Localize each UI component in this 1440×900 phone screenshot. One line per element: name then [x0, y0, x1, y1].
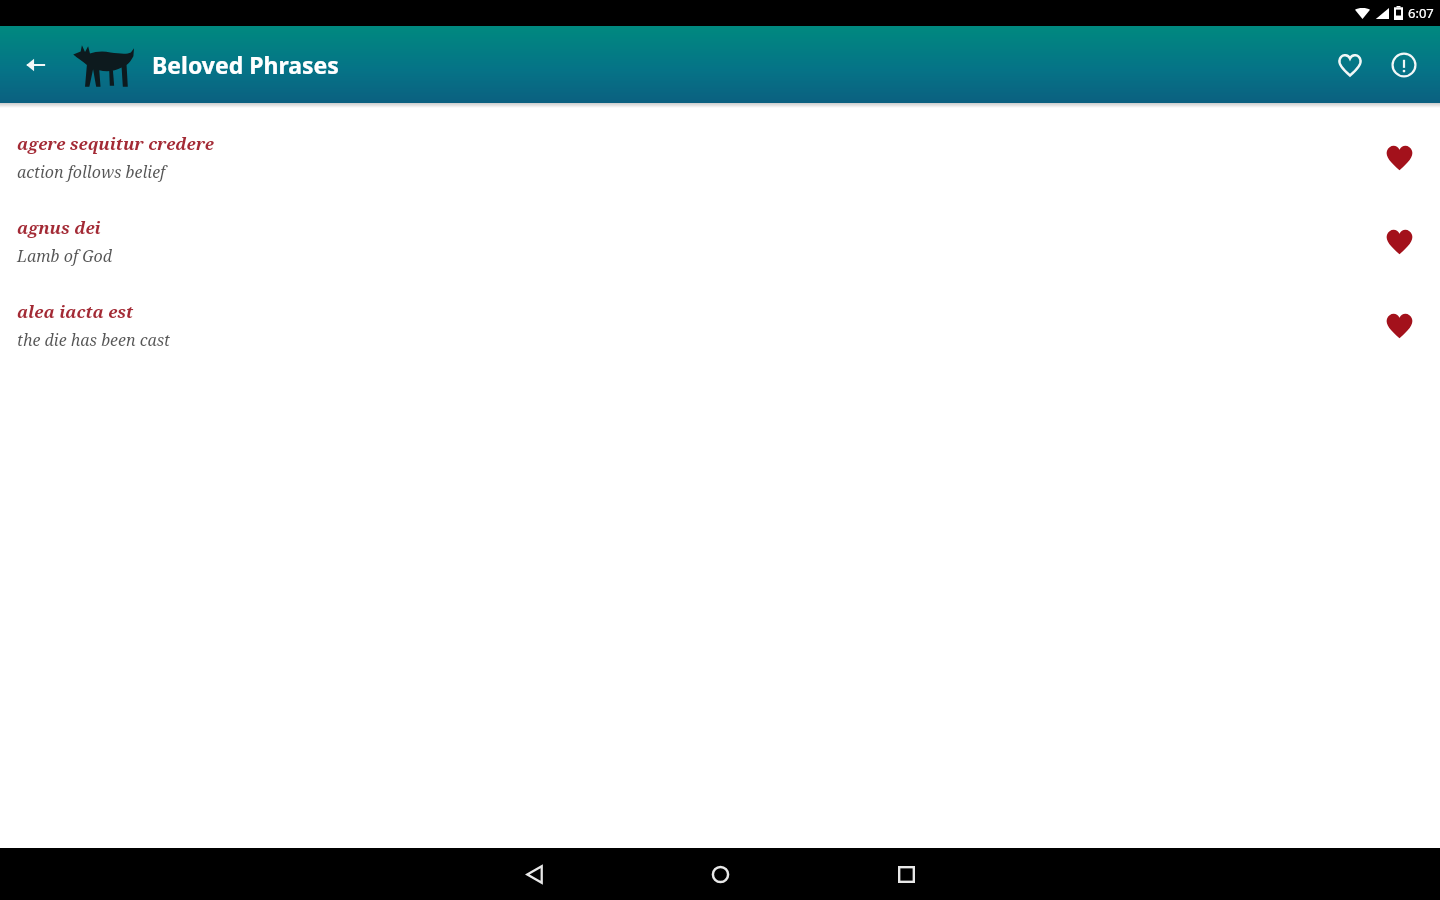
button[interactable]: Remove from favourites — [1376, 134, 1422, 180]
button[interactable]: Home — [689, 848, 751, 900]
button[interactable]: Recent apps — [875, 848, 937, 900]
button[interactable]: Remove from favourites — [1376, 302, 1422, 348]
staticText: Beloved Phrases — [152, 49, 339, 80]
button[interactable]: Remove from favourites — [1376, 218, 1422, 264]
button[interactable]: About — [1378, 39, 1430, 91]
button[interactable]: agere sequitur credere — [0, 115, 1440, 199]
staticText: agere sequitur credere — [17, 132, 214, 155]
staticText: 6:07 — [1408, 4, 1434, 22]
button[interactable]: Favourites — [1324, 39, 1376, 91]
staticText: alea iacta est — [17, 300, 134, 323]
staticText: Lamb of God — [17, 245, 113, 267]
staticText: the die has been cast — [17, 329, 171, 351]
staticText: agnus dei — [17, 216, 101, 239]
staticText: action follows belief — [17, 161, 166, 183]
button[interactable]: agnus dei — [0, 199, 1440, 283]
button[interactable]: Back — [14, 43, 58, 87]
button[interactable]: alea iacta est — [0, 283, 1440, 367]
button[interactable]: Back — [503, 848, 565, 900]
